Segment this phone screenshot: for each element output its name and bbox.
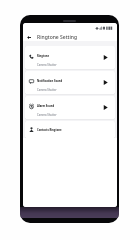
staticText: Ringtone xyxy=(37,54,50,58)
button[interactable]: Play xyxy=(101,103,110,112)
staticText: Camera Shutter xyxy=(37,113,57,117)
staticText: Contacts Ringtone xyxy=(37,128,62,132)
button[interactable]: Alarm Sound xyxy=(25,96,115,119)
button[interactable]: Play xyxy=(101,53,110,62)
button[interactable]: Contacts Ringtone xyxy=(25,121,115,138)
button[interactable]: Back xyxy=(25,34,32,41)
staticText: Camera Shutter xyxy=(37,63,57,67)
staticText: Alarm Sound xyxy=(37,104,55,108)
staticText: Camera Shutter xyxy=(37,88,57,92)
staticText: Ringtone Setting xyxy=(37,34,78,41)
button[interactable]: Ringtone xyxy=(25,46,115,69)
staticText: Notification Sound xyxy=(37,79,63,83)
button[interactable]: Notification Sound xyxy=(25,71,115,94)
button[interactable]: Play xyxy=(101,78,110,87)
